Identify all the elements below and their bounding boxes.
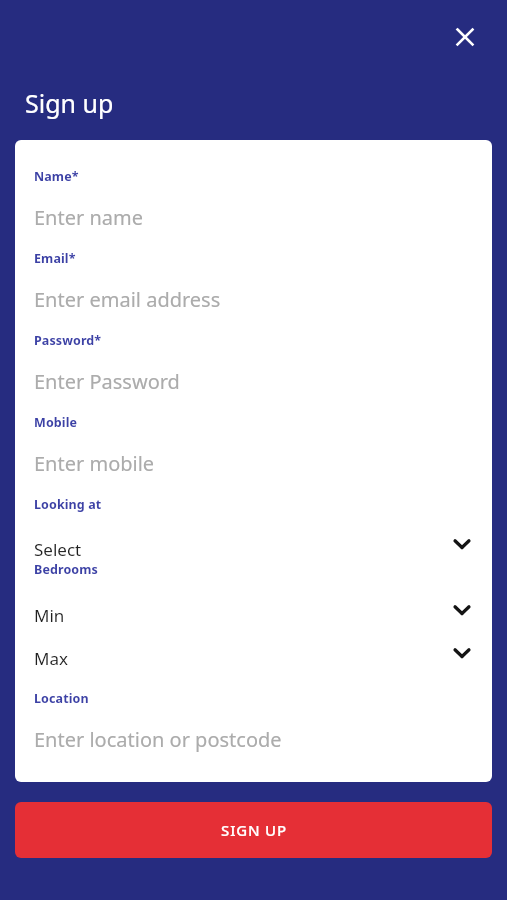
button[interactable]: Select xyxy=(15,528,492,564)
button[interactable]: SIGN UP xyxy=(15,802,492,858)
staticText: Sign up xyxy=(25,86,114,120)
staticText: Select xyxy=(34,538,82,561)
staticText: Enter name xyxy=(34,204,143,231)
staticText: Looking at xyxy=(34,496,102,513)
staticText: Mobile xyxy=(34,414,78,431)
staticText: Password* xyxy=(34,332,102,349)
staticText: Min xyxy=(34,604,65,627)
staticText: Max xyxy=(34,647,68,670)
staticText: SIGN UP xyxy=(221,820,287,840)
staticText: Enter email address xyxy=(34,286,221,313)
staticText: Name* xyxy=(34,168,79,185)
staticText: Email* xyxy=(34,250,76,267)
button[interactable]: Expand dropdown xyxy=(447,528,477,558)
staticText: Enter mobile xyxy=(34,450,155,477)
button[interactable]: Max xyxy=(15,635,492,675)
staticText: Location xyxy=(34,690,89,707)
button[interactable]: Expand dropdown xyxy=(447,637,477,667)
staticText: Enter Password xyxy=(34,368,180,395)
button[interactable]: Expand dropdown xyxy=(447,594,477,624)
staticText: Bedrooms xyxy=(34,561,98,578)
button[interactable]: Close xyxy=(445,17,485,57)
button[interactable]: Min xyxy=(15,592,492,632)
staticText: Enter location or postcode xyxy=(34,726,282,753)
